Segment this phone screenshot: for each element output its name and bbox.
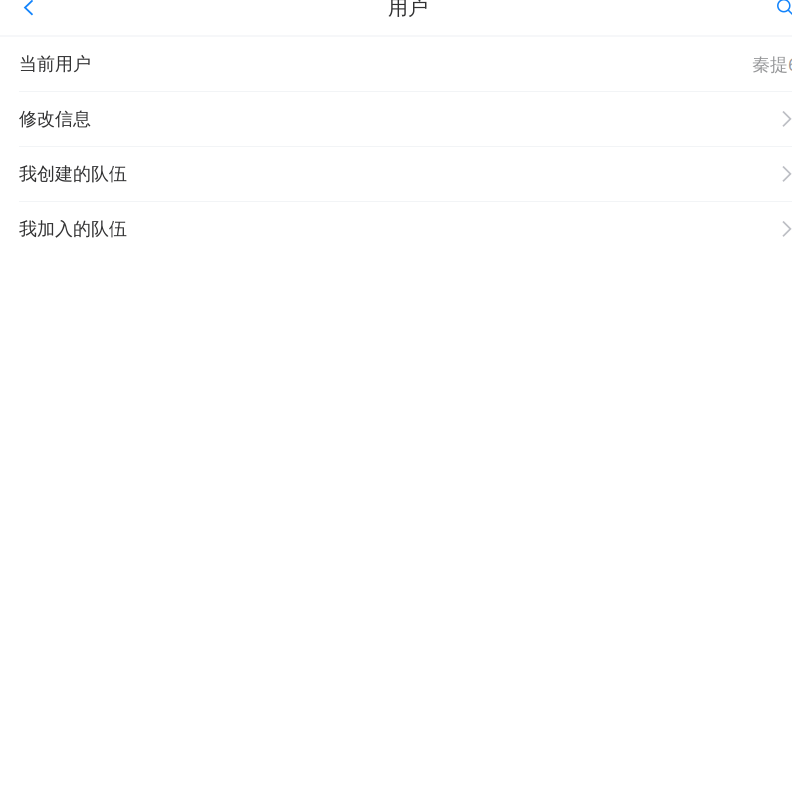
staticText: 当前用户 [19,53,91,75]
button[interactable]: Back [14,0,44,23]
staticText: 秦提6 [752,52,792,76]
button[interactable]: 当前用户 [0,37,792,91]
button[interactable]: 我创建的队伍 [0,147,792,201]
staticText: 我创建的队伍 [19,163,127,185]
staticText: 用户 [388,0,428,20]
button[interactable]: 我加入的队伍 [0,202,792,256]
button[interactable]: Search [771,0,792,23]
staticText: 我加入的队伍 [19,218,127,240]
staticText: 修改信息 [19,108,91,130]
button[interactable]: 修改信息 [0,92,792,146]
